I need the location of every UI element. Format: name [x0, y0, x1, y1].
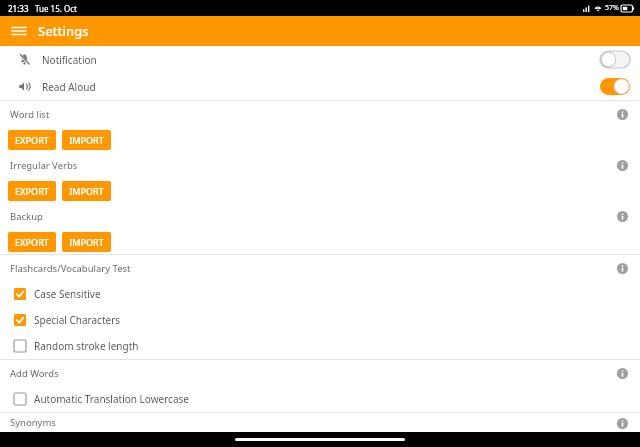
staticText: 57% [605, 3, 619, 13]
button[interactable]: Information about Backup [614, 208, 630, 224]
staticText: IMPORT [69, 236, 104, 248]
button[interactable]: Information about Add Words [614, 365, 630, 381]
button[interactable]: Special Characters [0, 307, 640, 333]
staticText: Automatic Translation Lowercase [34, 392, 189, 406]
button[interactable]: EXPORT [8, 232, 56, 252]
button[interactable]: Information about Synonyms [614, 415, 630, 431]
button[interactable]: Information about Word list [614, 106, 630, 122]
button[interactable]: Automatic Translation Lowercase [0, 386, 640, 412]
staticText: Case Sensitive [34, 287, 101, 301]
staticText: EXPORT [15, 185, 49, 197]
staticText: EXPORT [15, 236, 49, 248]
button[interactable]: IMPORT [62, 232, 111, 252]
staticText: EXPORT [15, 134, 49, 146]
button[interactable]: Case Sensitive [0, 281, 640, 307]
staticText: 21:33 [8, 3, 29, 14]
staticText: Random stroke length [34, 339, 139, 353]
staticText: IMPORT [69, 134, 104, 146]
button[interactable]: Read Aloud switch, on [600, 78, 630, 95]
button[interactable]: IMPORT [62, 130, 111, 150]
button[interactable]: EXPORT [8, 181, 56, 201]
button[interactable]: Open navigation menu [8, 20, 30, 42]
button[interactable]: Notification [0, 46, 640, 73]
button[interactable]: Random stroke length [0, 333, 640, 359]
staticText: Backup [10, 210, 43, 223]
button[interactable]: Information about Irregular Verbs [614, 157, 630, 173]
staticText: Tue 15. Oct [35, 3, 77, 14]
button[interactable]: Notification switch, off [600, 51, 630, 68]
button[interactable]: IMPORT [62, 181, 111, 201]
staticText: Synonyms [10, 416, 56, 429]
staticText: Add Words [10, 367, 59, 380]
button[interactable]: Information about Flashcards/Vocabulary … [614, 260, 630, 276]
staticText: Special Characters [34, 313, 121, 327]
staticText: IMPORT [69, 185, 104, 197]
staticText: Flashcards/Vocabulary Test [10, 262, 131, 275]
staticText: Irregular Verbs [10, 159, 78, 172]
staticText: Settings [38, 22, 89, 40]
staticText: Notification [42, 53, 97, 67]
staticText: Read Aloud [42, 80, 96, 94]
button[interactable]: Read Aloud [0, 73, 640, 100]
button[interactable]: EXPORT [8, 130, 56, 150]
staticText: Word list [10, 108, 50, 121]
